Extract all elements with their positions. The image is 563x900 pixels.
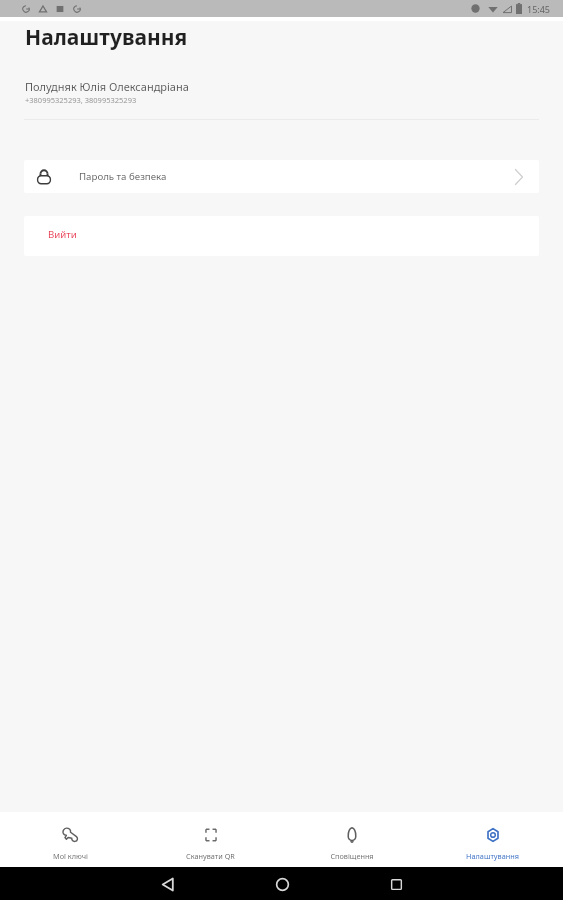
- button[interactable]: Back: [152, 868, 184, 900]
- staticText: Налаштування: [25, 23, 188, 52]
- staticText: Полудняк Юлія Олександріана: [25, 79, 189, 94]
- button[interactable]: Home: [266, 868, 298, 900]
- button[interactable]: Мої ключі: [0, 812, 140, 867]
- staticText: Сканувати QR: [186, 851, 235, 861]
- button[interactable]: Recents: [380, 868, 412, 900]
- button[interactable]: Сканувати QR: [140, 812, 281, 867]
- staticText: Пароль та безпека: [79, 170, 167, 183]
- staticText: Вийти: [48, 228, 77, 241]
- button[interactable]: Сповіщення: [281, 812, 422, 867]
- staticText: Налаштування: [466, 851, 519, 861]
- button[interactable]: Пароль та безпека: [24, 160, 539, 193]
- staticText: Мої ключі: [53, 851, 88, 861]
- button[interactable]: Вийти: [24, 216, 539, 256]
- staticText: +380995325293, 380995325293: [25, 95, 137, 105]
- button[interactable]: Налаштування: [422, 812, 563, 867]
- staticText: 15:45: [527, 3, 551, 15]
- staticText: Сповіщення: [330, 851, 374, 861]
